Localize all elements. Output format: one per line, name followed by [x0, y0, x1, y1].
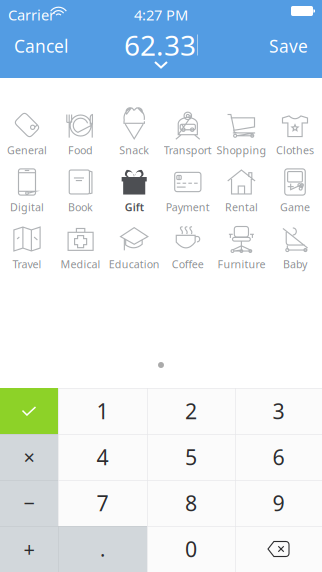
staticText: Clothes [276, 143, 314, 157]
staticText: Snack [119, 143, 149, 157]
button[interactable]: × [0, 434, 58, 480]
button[interactable]: Save [0, 26, 308, 66]
staticText: Rental [225, 200, 258, 214]
staticText: Travel [12, 257, 41, 271]
button[interactable]: Payment [161, 170, 215, 227]
button[interactable]: 9 [235, 480, 322, 526]
button[interactable]: 2 [147, 388, 235, 434]
staticText: 2 [185, 397, 197, 425]
button[interactable]: 5 [147, 434, 235, 480]
staticText: 8 [185, 489, 197, 517]
button[interactable]: Cancel [0, 26, 84, 66]
staticText: 3 [272, 397, 284, 425]
button[interactable]: 1 [58, 388, 147, 434]
button[interactable]: 8 [147, 480, 235, 526]
staticText: Save [269, 34, 308, 57]
button[interactable]: 0 [147, 526, 235, 572]
button[interactable]: 3 [235, 388, 322, 434]
button[interactable]: Book [54, 170, 107, 227]
button[interactable]: 4 [58, 434, 147, 480]
staticText: 9 [272, 489, 284, 517]
button[interactable]: Clothes [268, 113, 322, 170]
staticText: 7 [96, 489, 108, 517]
staticText: Shopping [216, 143, 266, 157]
staticText: 1 [96, 397, 108, 425]
staticText: General [7, 143, 47, 157]
staticText: Food [68, 143, 93, 157]
staticText: 6 [272, 443, 284, 471]
button[interactable]: 6 [235, 434, 322, 480]
button[interactable]: Amount [0, 29, 322, 61]
staticText: Game [280, 200, 310, 214]
button[interactable]: Gift [107, 170, 161, 227]
button[interactable]: Coffee [161, 227, 215, 284]
button[interactable]: Game [268, 170, 322, 227]
staticText: Transport [164, 143, 212, 157]
staticText: Book [68, 200, 93, 214]
staticText: × [23, 444, 34, 470]
button[interactable]: Food [54, 113, 107, 170]
staticText: Medical [61, 257, 101, 271]
button[interactable]: Furniture [215, 227, 268, 284]
staticText: Carrier [8, 5, 55, 24]
staticText: 4:27 PM [134, 5, 188, 24]
button[interactable]: 7 [58, 480, 147, 526]
staticText: Digital [10, 200, 44, 214]
staticText: + [23, 536, 34, 562]
button[interactable]: − [0, 480, 58, 526]
button[interactable]: Rental [215, 170, 268, 227]
button[interactable]: + [0, 526, 58, 572]
button[interactable]: Transport [161, 113, 215, 170]
button[interactable]: Snack [107, 113, 161, 170]
staticText: 5 [185, 443, 197, 471]
staticText: 62.33 [124, 26, 196, 64]
button[interactable]: Baby [268, 227, 322, 284]
button[interactable]: Done [0, 388, 58, 434]
staticText: Gift [125, 200, 144, 214]
staticText: . [100, 536, 105, 562]
staticText: Furniture [217, 257, 265, 271]
staticText: 0 [185, 535, 197, 563]
button[interactable]: General [0, 113, 54, 170]
button[interactable]: Shopping [215, 113, 268, 170]
button[interactable]: . [58, 526, 147, 572]
button[interactable]: Travel [0, 227, 54, 284]
staticText: − [23, 490, 34, 516]
staticText: 4 [96, 443, 108, 471]
staticText: Education [109, 257, 160, 271]
button[interactable]: Education [107, 227, 161, 284]
staticText: Cancel [14, 34, 68, 57]
button[interactable]: Medical [54, 227, 107, 284]
staticText: Baby [283, 257, 307, 271]
button[interactable] [235, 526, 322, 572]
staticText: Coffee [172, 257, 204, 271]
button[interactable]: Digital [0, 170, 54, 227]
staticText: Payment [166, 200, 210, 214]
